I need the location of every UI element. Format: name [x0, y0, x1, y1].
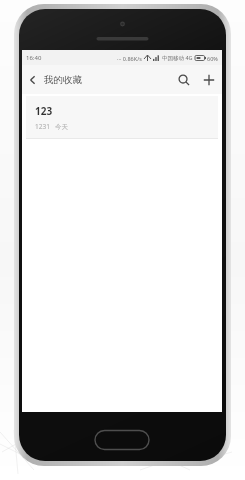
button[interactable]: Add [196, 67, 222, 93]
staticText: 1231 [35, 122, 50, 131]
staticText: 16:40 [26, 54, 42, 62]
staticText: 60% [207, 55, 218, 62]
staticText: ··· 0.86K/s [117, 55, 142, 62]
staticText: 123 [35, 104, 53, 118]
button[interactable]: Search [172, 68, 196, 92]
button[interactable]: Back [22, 69, 44, 91]
staticText: 今天 [55, 123, 68, 131]
button[interactable]: 123 [26, 96, 218, 139]
staticText: 中国移动 4G [162, 54, 193, 62]
staticText: 我的收藏 [44, 74, 82, 86]
